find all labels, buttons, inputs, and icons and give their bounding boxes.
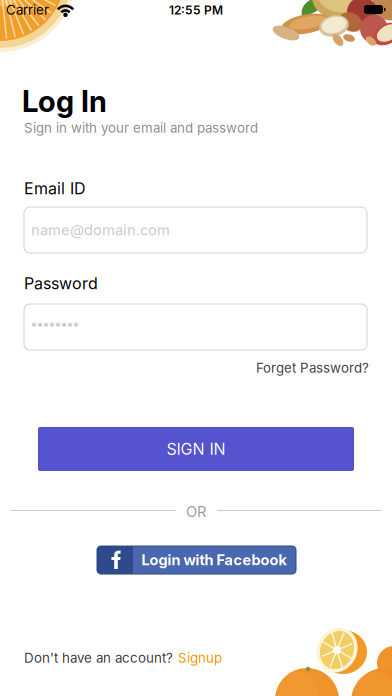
button[interactable]: SIGN IN [38, 427, 354, 471]
staticText: OR [186, 503, 206, 520]
staticText: Signup [178, 650, 222, 666]
button[interactable]: Login with Facebook [97, 546, 296, 574]
staticText: ******** [31, 320, 79, 334]
staticText: name@domain.com [31, 221, 170, 239]
staticText: 12:55 PM [169, 3, 223, 17]
button[interactable]: name@domain.com [24, 207, 367, 253]
staticText: Email ID [24, 179, 86, 198]
staticText: Carrier [6, 2, 49, 18]
staticText: Log In [22, 84, 107, 119]
staticText: Password [24, 274, 98, 293]
button[interactable]: Forget Password? [256, 360, 369, 376]
staticText: Don't have an account? [24, 650, 173, 666]
staticText: SIGN IN [166, 440, 225, 458]
button[interactable]: Don't have an account? [24, 650, 222, 666]
button[interactable]: ******** [24, 304, 367, 350]
staticText: Sign in with your email and password [24, 120, 258, 136]
staticText: Forget Password? [256, 360, 369, 376]
staticText: Login with Facebook [141, 551, 287, 569]
